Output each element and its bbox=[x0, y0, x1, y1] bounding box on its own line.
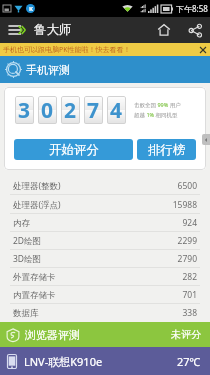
button[interactable]: 2D绘图 bbox=[0, 232, 210, 250]
button[interactable]: 内存 bbox=[0, 214, 210, 232]
button[interactable]: Share bbox=[180, 17, 210, 43]
button[interactable]: Home bbox=[148, 17, 180, 43]
staticText: 7 bbox=[87, 96, 100, 124]
button[interactable]: Menu bbox=[0, 17, 34, 43]
button[interactable]: 外置存储卡 bbox=[0, 268, 210, 286]
staticText: 924 bbox=[182, 217, 197, 229]
button[interactable]: LNV-联想K910e bbox=[0, 347, 210, 375]
staticText: 0 bbox=[41, 96, 54, 124]
staticText: 击败全国 99% 用户 bbox=[134, 101, 181, 109]
staticText: LNV-联想K910e bbox=[24, 354, 103, 369]
staticText: 27℃ bbox=[177, 354, 201, 369]
staticText: 手机也可以跟电脑PK性能啦！快去看看！ bbox=[3, 45, 131, 55]
staticText: 数据库 bbox=[13, 308, 39, 319]
staticText: 手机评测 bbox=[26, 63, 70, 77]
staticText: 2D绘图 bbox=[13, 235, 42, 247]
staticText: 浏览器评测 bbox=[25, 328, 80, 342]
staticText: 2790 bbox=[177, 253, 197, 265]
button[interactable]: 浏览器评测 bbox=[0, 322, 210, 347]
staticText: 下午8:58 bbox=[176, 3, 208, 14]
staticText: 内存 bbox=[13, 218, 30, 229]
staticText: 4 bbox=[110, 96, 123, 124]
staticText: 3D绘图 bbox=[13, 253, 42, 265]
button[interactable]: Close bbox=[196, 43, 210, 56]
staticText: 未评分 bbox=[171, 328, 201, 341]
staticText: 338 bbox=[182, 307, 197, 319]
staticText: 2299 bbox=[177, 235, 197, 247]
staticText: 外置存储卡 bbox=[13, 272, 56, 283]
button[interactable]: 手机评测 bbox=[0, 56, 210, 83]
staticText: 3 bbox=[18, 96, 31, 124]
staticText: 内置存储卡 bbox=[13, 290, 56, 301]
button[interactable]: 排行榜 bbox=[137, 139, 196, 160]
button[interactable]: 处理器(浮点) bbox=[0, 195, 210, 214]
staticText: 2 bbox=[64, 96, 77, 124]
staticText: 排行榜 bbox=[148, 142, 186, 158]
button[interactable]: 处理器(整数) bbox=[0, 176, 210, 195]
staticText: 701 bbox=[182, 289, 197, 301]
button[interactable]: 内置存储卡 bbox=[0, 286, 210, 304]
staticText: 鲁大师 bbox=[34, 22, 72, 38]
staticText: 6500 bbox=[177, 180, 197, 192]
staticText: 超越 1% 相同机型 bbox=[134, 111, 178, 119]
button[interactable]: 数据库 bbox=[0, 304, 210, 322]
button[interactable]: Expand panel bbox=[202, 134, 210, 145]
button[interactable]: 手机也可以跟电脑PK性能啦！快去看看！ bbox=[0, 43, 210, 56]
staticText: 开始评分 bbox=[49, 142, 99, 158]
button[interactable]: 开始评分 bbox=[14, 139, 133, 160]
staticText: 15988 bbox=[172, 199, 197, 211]
button[interactable]: 3D绘图 bbox=[0, 250, 210, 268]
staticText: 处理器(浮点) bbox=[13, 199, 61, 211]
staticText: K bbox=[29, 5, 33, 13]
staticText: 282 bbox=[182, 271, 197, 283]
staticText: 处理器(整数) bbox=[13, 180, 61, 192]
